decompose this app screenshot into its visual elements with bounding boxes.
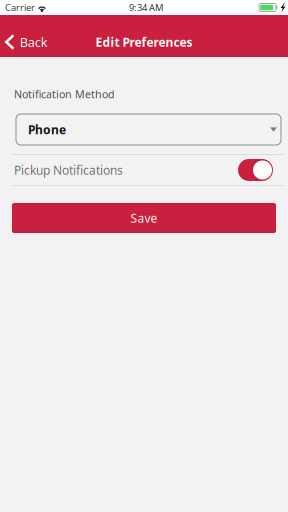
staticText: Pickup Notifications <box>14 162 123 178</box>
staticText: Back <box>20 33 48 51</box>
staticText: Phone <box>28 121 66 138</box>
staticText: Carrier <box>5 1 35 14</box>
button[interactable]: Pickup Notifications <box>238 159 273 181</box>
button[interactable]: Back <box>0 15 56 57</box>
staticText: Edit Preferences <box>95 34 192 50</box>
button[interactable]: Save <box>12 203 276 233</box>
staticText: 9:34 AM <box>129 1 163 14</box>
staticText: Notification Method <box>14 87 115 101</box>
staticText: Save <box>130 210 157 226</box>
button[interactable]: Phone <box>16 114 281 145</box>
